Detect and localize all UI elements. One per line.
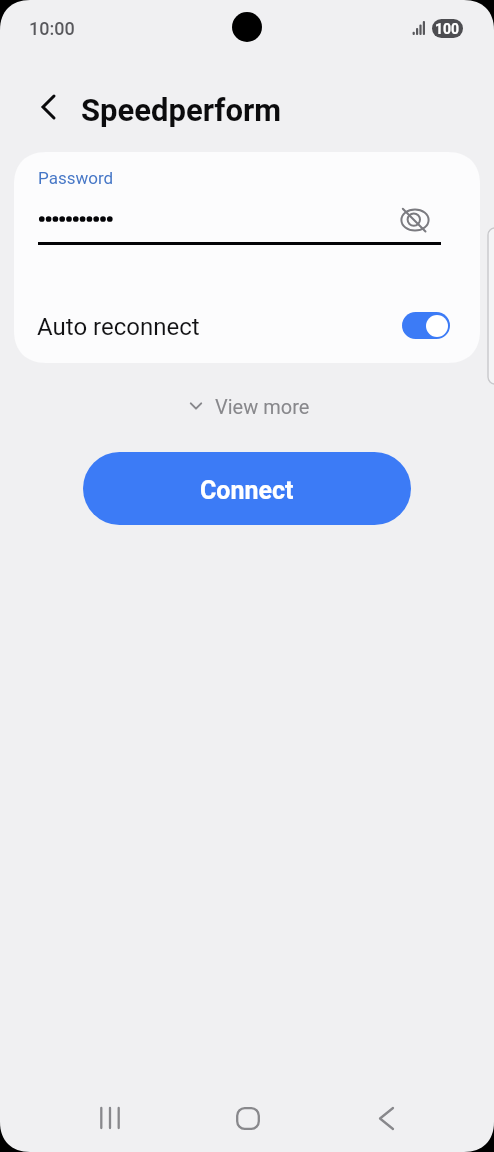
staticText: Auto reconnect xyxy=(37,313,200,341)
button[interactable]: Back xyxy=(27,86,69,128)
button[interactable]: Back xyxy=(350,1093,422,1143)
staticText: Password xyxy=(38,168,114,188)
staticText: 10:00 xyxy=(29,18,75,39)
button[interactable]: Show password xyxy=(394,199,436,241)
button[interactable]: Auto reconnect toggle xyxy=(402,312,450,339)
staticText: 100 xyxy=(435,21,460,37)
staticText: View more xyxy=(215,395,310,418)
button[interactable]: Connect xyxy=(83,452,411,525)
button[interactable]: Home xyxy=(212,1093,284,1143)
button[interactable]: Auto reconnect xyxy=(14,294,480,358)
staticText: Connect xyxy=(200,476,294,505)
button[interactable]: Recents xyxy=(74,1093,146,1143)
button[interactable]: View more xyxy=(189,388,310,424)
staticText: Speedperform xyxy=(81,92,282,128)
